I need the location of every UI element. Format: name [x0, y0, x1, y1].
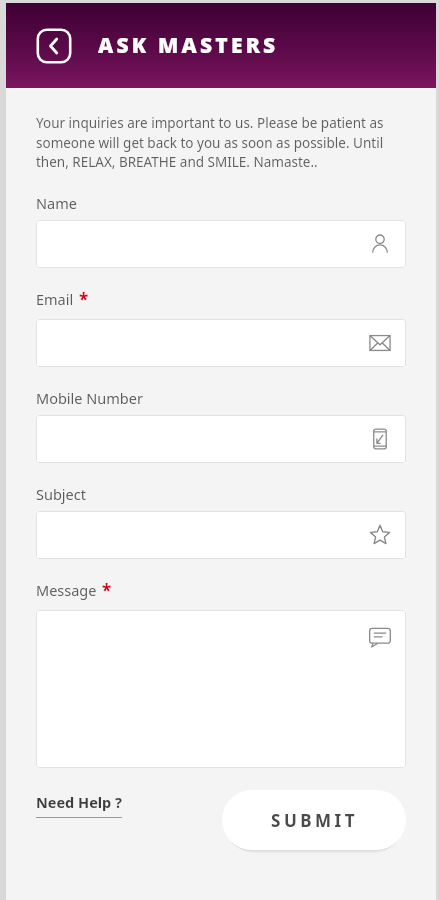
- button[interactable]: Email: [36, 319, 406, 367]
- staticText: Need Help ?: [36, 792, 122, 812]
- button[interactable]: Message: [36, 610, 406, 768]
- staticText: *: [102, 579, 112, 602]
- button[interactable]: Subject: [36, 511, 406, 559]
- staticText: Email: [36, 289, 74, 309]
- button[interactable]: Need Help ?: [36, 792, 126, 818]
- staticText: *: [79, 288, 89, 311]
- staticText: Your inquiries are important to us. Plea…: [36, 114, 414, 171]
- button[interactable]: Back: [35, 27, 73, 65]
- button[interactable]: Name: [36, 220, 406, 268]
- staticText: Mobile Number: [36, 388, 143, 408]
- button[interactable]: SUBMIT: [222, 790, 406, 850]
- staticText: Message: [36, 580, 97, 600]
- staticText: Subject: [36, 484, 86, 504]
- staticText: ASK MASTERS: [98, 31, 279, 60]
- staticText: SUBMIT: [271, 809, 358, 832]
- staticText: Name: [36, 193, 77, 213]
- button[interactable]: Mobile Number: [36, 415, 406, 463]
